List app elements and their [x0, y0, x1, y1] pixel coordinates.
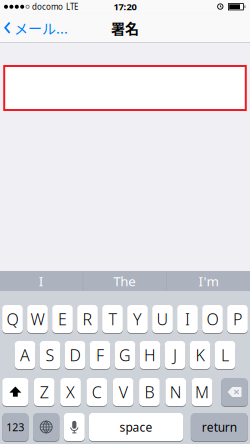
button[interactable]: B: [139, 377, 160, 406]
button[interactable]: H: [140, 340, 160, 369]
staticText: A: [20, 344, 30, 366]
staticText: 署名: [111, 18, 139, 38]
staticText: N: [170, 381, 182, 403]
button[interactable]: I'm: [167, 271, 250, 291]
button[interactable]: T: [102, 304, 123, 333]
button[interactable]: N: [165, 377, 186, 406]
button[interactable]: Delete: [221, 377, 248, 406]
button[interactable]: L: [215, 340, 235, 369]
staticText: I'm: [198, 272, 218, 290]
button[interactable]: Q: [2, 304, 23, 333]
button[interactable]: R: [77, 304, 98, 333]
button[interactable]: I: [0, 271, 83, 291]
staticText: S: [45, 344, 54, 366]
button[interactable]: X: [60, 377, 81, 406]
staticText: The: [113, 272, 136, 290]
staticText: B: [144, 381, 154, 403]
button[interactable]: U: [152, 304, 173, 333]
button[interactable]: Z: [34, 377, 55, 406]
staticText: O: [206, 308, 218, 330]
button[interactable]: Next keyboard: [33, 412, 59, 441]
button[interactable]: V: [113, 377, 133, 406]
staticText: C: [92, 381, 102, 403]
staticText: V: [119, 381, 128, 403]
button[interactable]: Y: [127, 304, 148, 333]
staticText: U: [156, 308, 168, 330]
button[interactable]: E: [52, 304, 73, 333]
staticText: Q: [6, 308, 18, 330]
staticText: LTE: [66, 1, 78, 12]
button[interactable]: F: [90, 340, 110, 369]
staticText: L: [221, 344, 229, 366]
staticText: J: [173, 344, 177, 366]
button[interactable]: J: [165, 340, 185, 369]
button[interactable]: Dictate: [64, 412, 85, 441]
staticText: E: [58, 308, 67, 330]
button[interactable]: P: [227, 304, 248, 333]
staticText: H: [144, 344, 156, 366]
button[interactable]: S: [40, 340, 60, 369]
button[interactable]: Signature text field: [0, 65, 250, 111]
staticText: M: [195, 381, 209, 403]
button[interactable]: M: [192, 377, 212, 406]
staticText: R: [82, 308, 92, 330]
button[interactable]: W: [27, 304, 48, 333]
button[interactable]: return: [191, 412, 248, 441]
button[interactable]: K: [190, 340, 210, 369]
staticText: 123: [6, 420, 24, 434]
button[interactable]: D: [65, 340, 85, 369]
button[interactable]: O: [202, 304, 223, 333]
staticText: G: [119, 344, 131, 366]
button[interactable]: G: [115, 340, 135, 369]
staticText: K: [195, 344, 204, 366]
button[interactable]: A: [15, 340, 35, 369]
staticText: T: [108, 308, 116, 330]
staticText: X: [66, 381, 75, 403]
staticText: D: [69, 344, 80, 366]
button[interactable]: C: [86, 377, 107, 406]
staticText: Y: [133, 308, 142, 330]
staticText: F: [96, 344, 104, 366]
staticText: W: [30, 308, 44, 330]
staticText: メール...: [14, 18, 68, 38]
button[interactable]: I: [177, 304, 198, 333]
staticText: docomo: [32, 1, 63, 12]
staticText: return: [202, 419, 237, 435]
staticText: I: [39, 272, 44, 290]
button[interactable]: 123: [2, 412, 28, 441]
staticText: Z: [40, 381, 49, 403]
staticText: space: [120, 419, 153, 435]
button[interactable]: The: [83, 271, 166, 291]
button[interactable]: space: [89, 412, 183, 441]
button[interactable]: Shift: [2, 377, 28, 406]
staticText: I: [185, 308, 190, 330]
button[interactable]: メール...: [0, 18, 68, 38]
staticText: P: [233, 308, 242, 330]
staticText: 17:20: [113, 1, 136, 13]
